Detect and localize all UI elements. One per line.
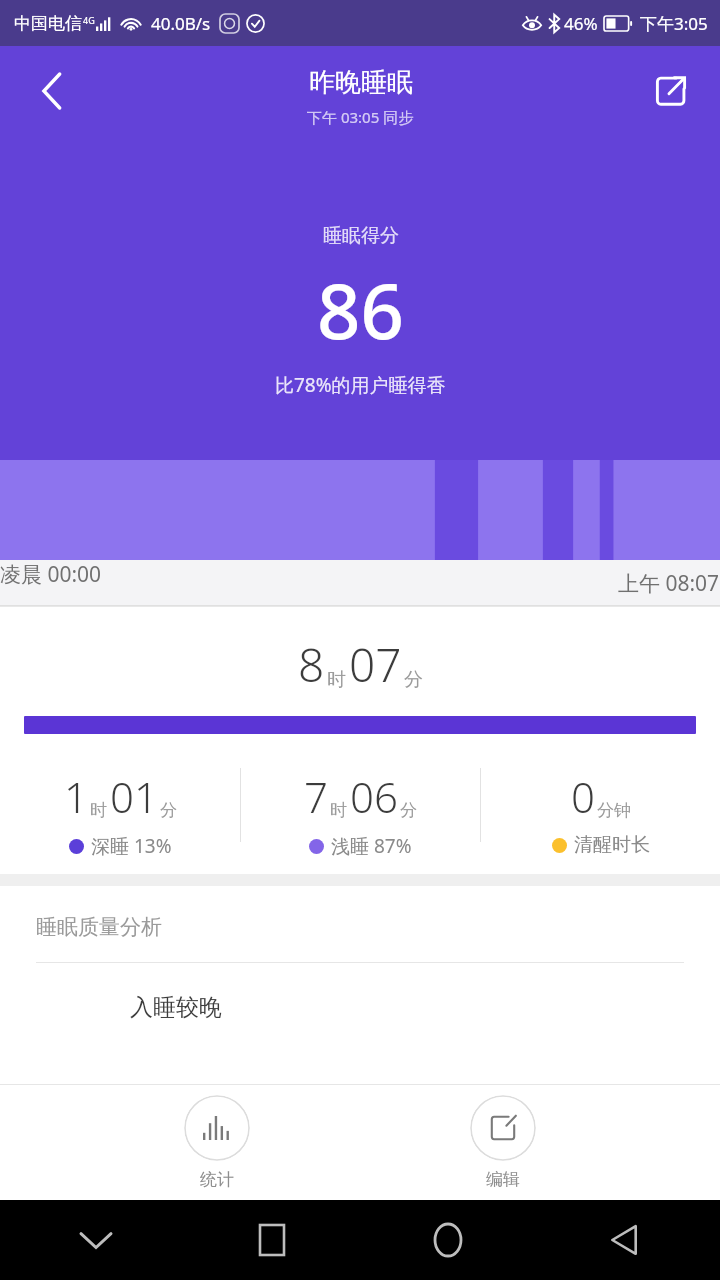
staticText: 1 (64, 768, 88, 825)
button[interactable]: Hide keyboard (60, 1204, 132, 1276)
staticText: 清醒时长 (574, 833, 650, 857)
staticText: 入睡较晚 (130, 993, 222, 1022)
button[interactable]: Statistics (180, 1091, 254, 1194)
staticText: 比78%的用户睡得香 (275, 372, 446, 398)
staticText: 下午 03:05 同步 (307, 107, 414, 127)
staticText: 深睡 13% (91, 833, 172, 859)
staticText: 7 (304, 768, 328, 825)
staticText: 4G (83, 14, 95, 26)
staticText: 8 (298, 633, 325, 696)
staticText: 86 (317, 258, 404, 362)
staticText: 编辑 (486, 1169, 520, 1190)
button[interactable]: Edit (466, 1091, 540, 1194)
staticText: 浅睡 87% (331, 833, 412, 859)
staticText: 下午3:05 (640, 12, 708, 35)
staticText: 凌晨 00:00 (0, 560, 102, 589)
staticText: 40.0B/s (151, 12, 211, 35)
staticText: 上午 08:07 (618, 569, 720, 598)
button[interactable]: Recents (236, 1204, 308, 1276)
staticText: 睡眠质量分析 (36, 914, 162, 940)
staticText: 分 (404, 668, 423, 692)
staticText: 统计 (200, 1169, 234, 1190)
staticText: 分钟 (597, 800, 631, 821)
staticText: 睡眠得分 (323, 224, 399, 248)
staticText: 时 (330, 800, 347, 821)
button[interactable]: Back (588, 1204, 660, 1276)
staticText: 分 (160, 800, 177, 821)
button[interactable]: Home (412, 1204, 484, 1276)
button[interactable]: Share (642, 62, 700, 120)
staticText: 46% (564, 12, 598, 35)
staticText: 06 (350, 768, 398, 825)
staticText: 分 (400, 800, 417, 821)
staticText: 时 (327, 668, 346, 692)
staticText: 昨晚睡眠 (309, 66, 413, 99)
staticText: 0 (571, 768, 595, 825)
staticText: 中国电信 (14, 13, 82, 34)
button[interactable]: Back (22, 60, 84, 122)
staticText: 01 (110, 768, 158, 825)
staticText: 07 (349, 633, 402, 696)
staticText: 时 (90, 800, 107, 821)
